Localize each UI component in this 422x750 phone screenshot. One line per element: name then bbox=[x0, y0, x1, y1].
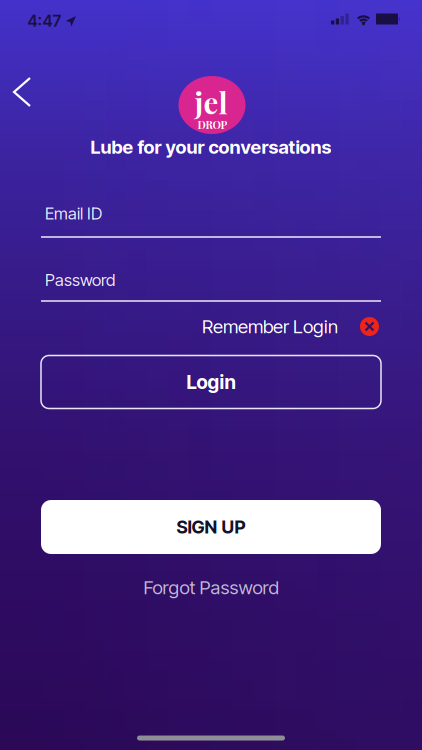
staticText: Remember Login bbox=[202, 315, 338, 338]
staticText: Password bbox=[45, 270, 115, 290]
button[interactable]: Login bbox=[41, 355, 381, 408]
button[interactable]: Remember Login bbox=[39, 315, 379, 338]
staticText: Lube for your conversations bbox=[90, 136, 331, 158]
button[interactable]: SIGN UP bbox=[41, 500, 381, 554]
button[interactable]: Forgot Password bbox=[143, 576, 278, 599]
staticText: Email ID bbox=[45, 203, 102, 224]
button[interactable]: Password bbox=[41, 266, 381, 302]
staticText: Forgot Password bbox=[143, 576, 278, 599]
button[interactable]: Email ID bbox=[41, 202, 381, 238]
staticText: D R O P bbox=[197, 117, 227, 132]
staticText: SIGN UP bbox=[176, 516, 245, 538]
button[interactable] bbox=[4, 68, 40, 116]
staticText: 4:47 bbox=[27, 11, 61, 31]
staticText: Login bbox=[186, 370, 235, 394]
staticText: jel bbox=[194, 82, 227, 121]
